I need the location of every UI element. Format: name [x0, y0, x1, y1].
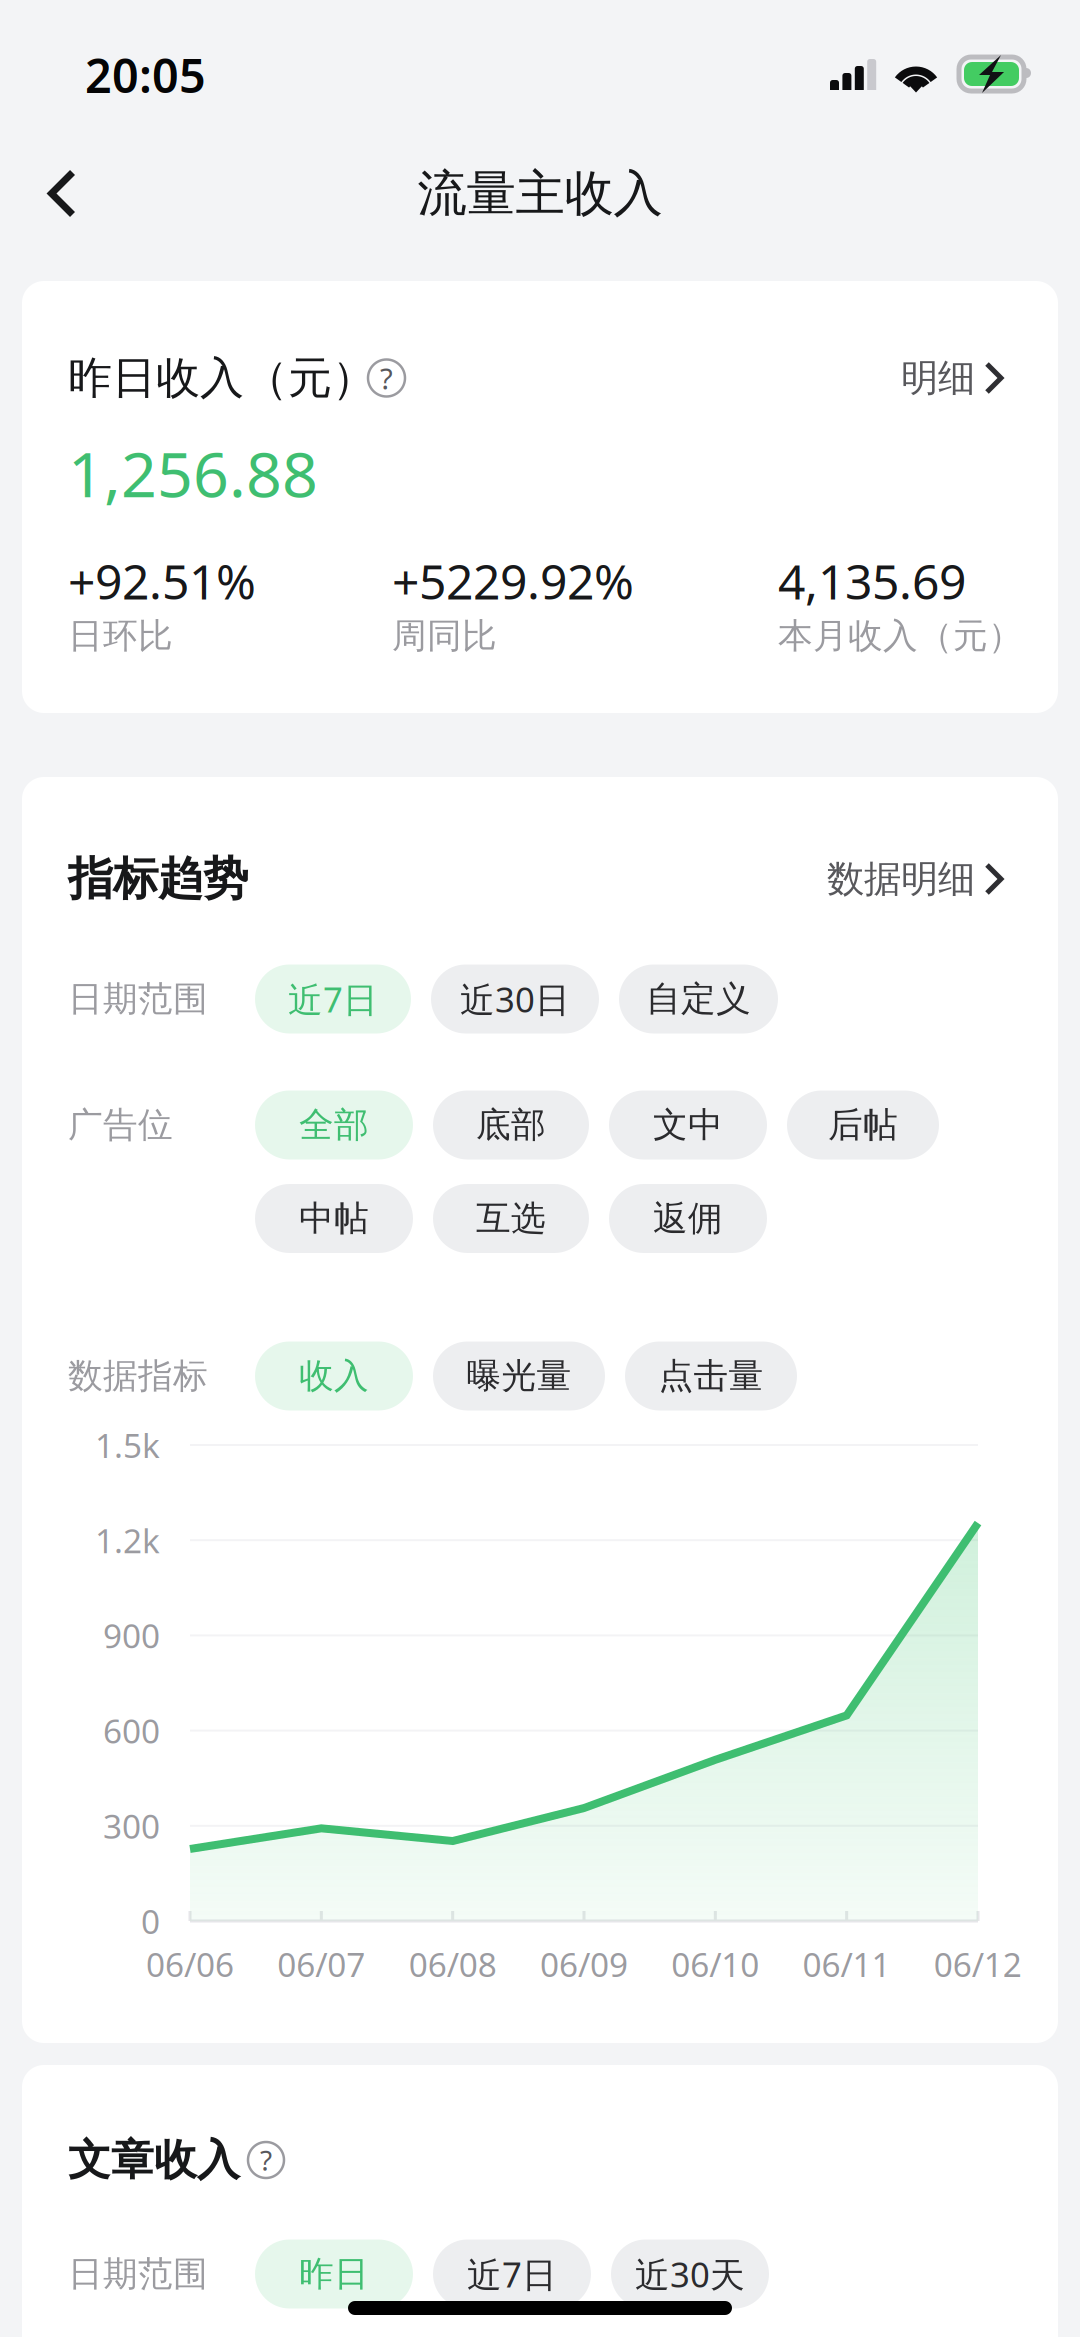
staticText: 数据指标	[68, 1355, 208, 1397]
staticText: 06/09	[540, 1942, 628, 1986]
button[interactable]: 自定义	[619, 964, 778, 1033]
staticText: 曝光量	[466, 1355, 571, 1397]
staticText: 日期范围	[68, 2253, 208, 2295]
staticText: 本月收入（元）	[778, 615, 1023, 657]
staticText: 300	[103, 1804, 160, 1848]
staticText: 昨日	[299, 2253, 369, 2295]
staticText: 后帖	[828, 1104, 898, 1146]
staticText: 20:05	[85, 44, 206, 106]
button[interactable]: 后帖	[787, 1090, 939, 1159]
staticText: 日期范围	[68, 978, 208, 1020]
staticText: 06/06	[146, 1942, 234, 1986]
button[interactable]: 明细	[901, 355, 1012, 401]
staticText: 互选	[476, 1197, 546, 1240]
staticText: 中帖	[299, 1197, 369, 1240]
staticText: 1.5k	[95, 1423, 160, 1467]
staticText: 日环比	[68, 615, 173, 657]
staticText: 收入	[299, 1355, 369, 1397]
staticText: 0	[141, 1899, 160, 1943]
staticText: 900	[103, 1613, 160, 1658]
button[interactable]: 近7日	[255, 964, 411, 1033]
button[interactable]: Back	[6, 106, 118, 281]
button[interactable]: 近30日	[431, 964, 599, 1033]
button[interactable]: 数据明细	[827, 856, 1012, 902]
button[interactable]: 近7日	[433, 2239, 591, 2308]
staticText: 1.2k	[95, 1518, 160, 1562]
staticText: 返佣	[653, 1197, 723, 1240]
staticText: 数据明细	[827, 856, 975, 902]
staticText: 点击量	[658, 1355, 763, 1397]
staticText: 指标趋势	[68, 851, 248, 907]
staticText: +5229.92%	[392, 549, 634, 613]
staticText: 近30日	[460, 976, 570, 1022]
button[interactable]: 互选	[433, 1184, 589, 1253]
staticText: 600	[103, 1708, 160, 1753]
button[interactable]: 近30天	[611, 2239, 769, 2308]
button[interactable]: 返佣	[609, 1184, 767, 1253]
staticText: 全部	[299, 1104, 369, 1146]
staticText: 明细	[901, 355, 975, 401]
staticText: 06/11	[802, 1942, 890, 1986]
button[interactable]: 文中	[609, 1090, 767, 1159]
button[interactable]: 中帖	[255, 1184, 413, 1253]
button[interactable]: 昨日	[255, 2239, 413, 2308]
button[interactable]: 全部	[255, 1090, 413, 1159]
button[interactable]: 点击量	[625, 1341, 797, 1410]
staticText: 近7日	[467, 2251, 557, 2297]
staticText: 06/07	[277, 1942, 365, 1986]
staticText: ?	[260, 2141, 272, 2179]
staticText: 06/12	[934, 1942, 1022, 1986]
staticText: 昨日收入（元）	[68, 351, 376, 405]
staticText: 底部	[476, 1104, 546, 1146]
button[interactable]: 收入	[255, 1341, 413, 1410]
staticText: +92.51%	[68, 549, 256, 613]
staticText: 广告位	[68, 1104, 173, 1146]
staticText: 文章收入	[68, 2134, 240, 2186]
staticText: 近7日	[288, 976, 378, 1022]
staticText: 近30天	[635, 2251, 745, 2297]
staticText: 文中	[653, 1104, 723, 1146]
button[interactable]: 曝光量	[433, 1341, 605, 1410]
staticText: 06/10	[671, 1942, 759, 1986]
staticText: 1,256.88	[68, 431, 318, 515]
staticText: 06/08	[409, 1942, 497, 1986]
staticText: ?	[380, 358, 393, 397]
button[interactable]: 底部	[433, 1090, 589, 1159]
staticText: 4,135.69	[778, 549, 966, 613]
staticText: 流量主收入	[417, 163, 662, 224]
staticText: 自定义	[646, 978, 751, 1020]
staticText: 周同比	[392, 615, 497, 657]
